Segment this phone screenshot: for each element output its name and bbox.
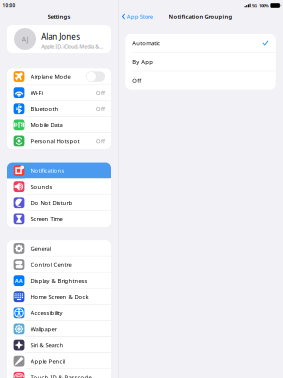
button[interactable]: Apple Pencil — [7, 353, 111, 369]
button[interactable]: Touch ID & Passcode — [7, 369, 111, 378]
staticText: Settings — [47, 12, 70, 20]
staticText: AA — [15, 277, 23, 284]
button[interactable]: Personal Hotspot — [7, 133, 111, 149]
button[interactable]: Notifications — [7, 162, 111, 179]
staticText: 10:00 — [3, 2, 16, 9]
button[interactable]: Automatic — [125, 34, 275, 52]
staticText: Accessibility — [31, 309, 63, 317]
button[interactable]: Off — [125, 71, 275, 89]
staticText: Mobile Data — [31, 121, 63, 129]
button[interactable]: Wallpaper — [7, 321, 111, 337]
staticText: Bluetooth — [31, 105, 59, 113]
staticText: Apple ID, iCloud, Media &… — [41, 43, 103, 50]
staticText: Apple Pencil — [31, 357, 65, 365]
button[interactable]: Mobile Data — [7, 117, 111, 133]
staticText: Off — [96, 105, 105, 113]
button[interactable]: General — [7, 240, 111, 256]
staticText: AJ — [21, 34, 28, 44]
button[interactable]: Wi-Fi — [7, 85, 111, 101]
staticText: Off — [96, 89, 105, 97]
button[interactable]: Do Not Disturb — [7, 195, 111, 211]
button[interactable]: Bluetooth — [7, 101, 111, 117]
button[interactable]: Home Screen & Dock — [7, 289, 111, 305]
button[interactable]: App Store — [118, 11, 156, 22]
button[interactable]: Screen Time — [7, 211, 111, 227]
staticText: Personal Hotspot — [31, 137, 80, 145]
staticText: Wi-Fi — [31, 89, 43, 97]
staticText: Alan Jones — [41, 31, 80, 42]
staticText: Automatic — [132, 39, 160, 47]
staticText: Notifications — [31, 167, 65, 174]
staticText: Sounds — [31, 183, 53, 191]
staticText: Touch ID & Passcode — [31, 373, 92, 378]
staticText: App Store — [127, 13, 153, 20]
button[interactable]: AA — [7, 273, 111, 289]
staticText: Notification Grouping — [168, 13, 232, 20]
staticText: 100% — [259, 3, 269, 8]
staticText: Airplane Mode — [31, 73, 71, 80]
staticText: By App — [132, 58, 153, 66]
staticText: Display & Brightness — [31, 277, 88, 285]
staticText: Do Not Disturb — [31, 199, 73, 207]
staticText: Screen Time — [31, 215, 63, 223]
button[interactable]: Control Centre — [7, 256, 111, 273]
staticText: Siri & Search — [31, 341, 64, 349]
staticText: Home Screen & Dock — [31, 293, 89, 301]
button[interactable]: By App — [125, 53, 275, 71]
staticText: Control Centre — [31, 261, 72, 268]
button[interactable]: Airplane Mode — [7, 68, 111, 85]
button[interactable]: AJ — [7, 25, 111, 53]
staticText: General — [31, 244, 51, 252]
staticText: Off — [132, 76, 141, 84]
staticText: 5G — [252, 3, 257, 8]
button[interactable]: Sounds — [7, 179, 111, 195]
staticText: Off — [96, 137, 105, 145]
button[interactable]: Accessibility — [7, 305, 111, 321]
button[interactable]: Siri & Search — [7, 337, 111, 353]
staticText: Wallpaper — [31, 325, 57, 333]
